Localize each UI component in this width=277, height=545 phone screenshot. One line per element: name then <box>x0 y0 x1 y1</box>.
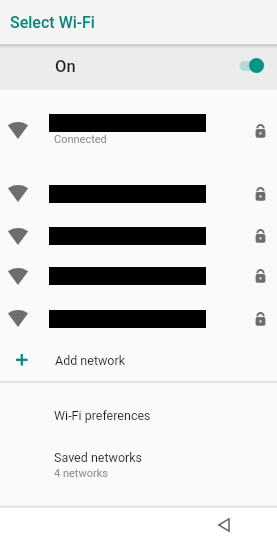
staticText: Select Wi-Fi <box>10 13 95 32</box>
staticText: Wi-Fi preferences <box>54 408 151 423</box>
staticText: Saved networks <box>54 450 143 465</box>
button[interactable] <box>0 214 277 256</box>
button[interactable]: Saved networks <box>0 443 277 493</box>
button[interactable] <box>0 298 277 340</box>
button[interactable]: Add network <box>0 345 277 375</box>
button[interactable]: Connected <box>0 93 277 153</box>
button[interactable]: Wi-Fi preferences <box>0 398 277 436</box>
button[interactable]: On <box>0 48 277 90</box>
button[interactable] <box>0 256 277 298</box>
button[interactable] <box>0 171 277 214</box>
staticText: 4 networks <box>54 467 108 480</box>
button[interactable] <box>206 509 242 545</box>
staticText: On <box>55 57 76 76</box>
staticText: Connected <box>54 133 107 146</box>
staticText: Add network <box>55 353 126 368</box>
